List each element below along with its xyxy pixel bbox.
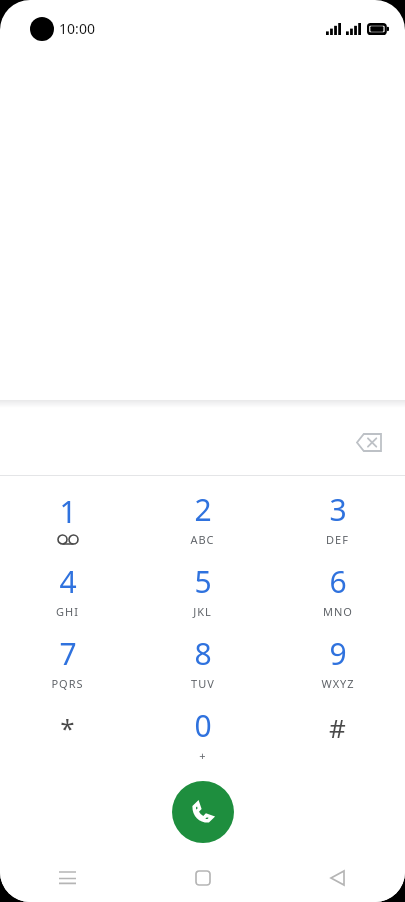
staticText: DEF <box>326 532 349 547</box>
button[interactable]: # <box>270 698 405 770</box>
button[interactable]: 9 <box>270 626 405 698</box>
button[interactable]: Backspace <box>345 418 393 466</box>
staticText: # <box>329 710 346 745</box>
button[interactable]: 8 <box>135 626 270 698</box>
button[interactable]: Back <box>270 854 405 902</box>
button[interactable]: Recent apps <box>0 854 135 902</box>
staticText: JKL <box>193 604 212 619</box>
button[interactable]: Home <box>135 854 270 902</box>
staticText: + <box>199 748 207 763</box>
staticText: 6 <box>329 561 347 602</box>
staticText: 1 <box>59 491 77 532</box>
button[interactable]: 0 <box>135 698 270 770</box>
staticText: 4 <box>59 561 77 602</box>
staticText: 2 <box>194 489 212 530</box>
button[interactable]: 6 <box>270 554 405 626</box>
staticText: 0 <box>194 705 212 746</box>
button[interactable]: * <box>0 698 135 770</box>
staticText: 5 <box>194 561 212 602</box>
button[interactable]: 3 <box>270 482 405 554</box>
staticText: GHI <box>56 604 79 619</box>
staticText: 3 <box>329 489 347 530</box>
staticText: PQRS <box>51 676 84 691</box>
staticText: TUV <box>191 676 215 691</box>
staticText: ABC <box>190 532 215 547</box>
staticText: 8 <box>194 633 212 674</box>
staticText: MNO <box>323 604 353 619</box>
staticText: * <box>60 710 75 745</box>
staticText: WXYZ <box>321 676 355 691</box>
staticText: 10:00 <box>59 19 95 38</box>
staticText: 7 <box>59 633 77 674</box>
button[interactable]: 1 <box>0 482 135 554</box>
staticText: 9 <box>329 633 347 674</box>
button[interactable]: Call <box>172 781 234 843</box>
button[interactable]: 5 <box>135 554 270 626</box>
button[interactable]: 2 <box>135 482 270 554</box>
button[interactable]: 4 <box>0 554 135 626</box>
button[interactable]: 7 <box>0 626 135 698</box>
